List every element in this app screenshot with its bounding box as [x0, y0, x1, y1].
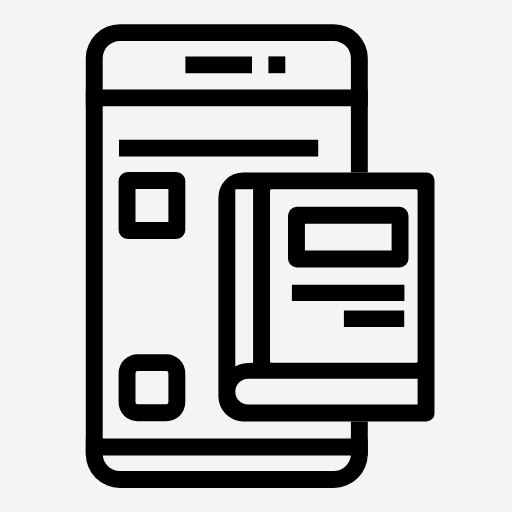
button[interactable]: Mobile reading: e-book on a smartphone [0, 0, 512, 512]
